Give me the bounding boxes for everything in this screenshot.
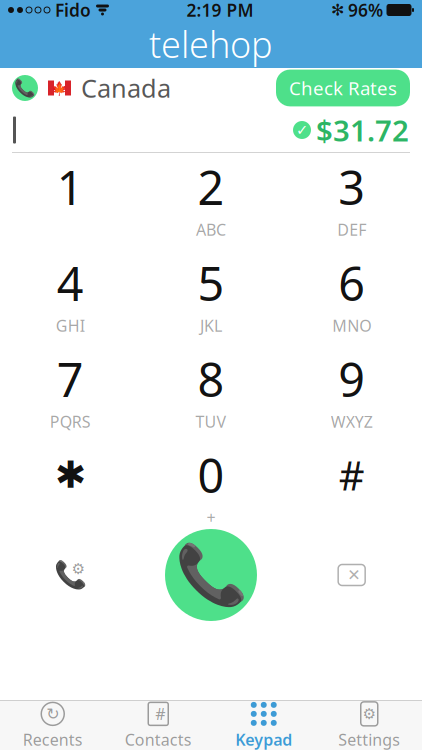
staticText: ✕ — [347, 566, 360, 584]
staticText: 📞 — [14, 78, 36, 98]
staticText: 📞 — [54, 560, 87, 590]
button[interactable]: 2 — [141, 161, 281, 235]
staticText: ⚙ — [72, 561, 85, 577]
staticText: ⚙ — [363, 706, 376, 722]
button[interactable]: 5 — [141, 257, 281, 331]
button[interactable]: Call — [141, 529, 281, 621]
staticText: MNO — [332, 315, 371, 336]
staticText: 🍁 — [51, 80, 68, 96]
staticText: Recents — [23, 729, 83, 750]
staticText: Keypad — [235, 729, 292, 750]
staticText: 1 — [57, 156, 84, 218]
button[interactable]: # — [281, 449, 422, 523]
staticText: GHI — [56, 315, 85, 336]
staticText: 7 — [57, 348, 84, 410]
staticText: WXYZ — [331, 411, 373, 432]
staticText: PQRS — [50, 411, 91, 432]
staticText: 4 — [57, 252, 84, 314]
staticText: JKL — [200, 315, 222, 336]
staticText: 9 — [338, 348, 365, 410]
button[interactable]: Check Rates — [276, 70, 410, 106]
staticText: Fido — [55, 0, 91, 21]
staticText: # — [339, 448, 365, 501]
staticText: ✻ — [331, 1, 344, 19]
button[interactable]: 7 — [0, 353, 141, 427]
staticText: ABC — [196, 219, 226, 240]
button[interactable]: 9 — [281, 353, 422, 427]
staticText: $31.72 — [316, 110, 409, 149]
staticText: ✱ — [55, 454, 86, 496]
button[interactable]: ⚙ — [316, 701, 422, 750]
staticText: Contacts — [125, 729, 192, 750]
staticText: 2:19 PM — [186, 0, 253, 21]
button[interactable]: 8 — [141, 353, 281, 427]
button[interactable]: 1 — [0, 161, 141, 235]
button[interactable]: 3 — [281, 161, 422, 235]
staticText: + — [206, 507, 215, 528]
staticText: 0 — [197, 444, 224, 506]
staticText: 8 — [197, 348, 224, 410]
staticText: 96% — [348, 0, 383, 21]
button[interactable]: ✱ — [0, 449, 141, 523]
staticText: 5 — [197, 252, 224, 314]
staticText: TUV — [195, 411, 226, 432]
button[interactable]: 📞 — [12, 67, 171, 109]
staticText: 6 — [338, 252, 365, 314]
staticText: 2 — [197, 156, 224, 218]
button[interactable]: 0 — [141, 449, 281, 523]
staticText: 3 — [338, 156, 365, 218]
button[interactable]: 6 — [281, 257, 422, 331]
staticText: 📞 — [174, 541, 247, 608]
staticText: ↻ — [46, 705, 59, 723]
staticText: Settings — [338, 729, 400, 750]
button[interactable]: 4 — [0, 257, 141, 331]
staticText: Canada — [81, 71, 171, 105]
button[interactable]: Delete — [281, 563, 422, 587]
button[interactable]: Keypad — [211, 701, 316, 750]
button[interactable]: ↻ — [0, 701, 105, 750]
staticText: # — [155, 703, 165, 724]
staticText: telehop — [149, 20, 273, 68]
staticText: Check Rates — [289, 76, 397, 100]
staticText: DEF — [337, 219, 366, 240]
staticText: ✓ — [296, 122, 308, 138]
button[interactable]: # — [105, 701, 211, 750]
button[interactable]: Call settings — [0, 555, 141, 595]
